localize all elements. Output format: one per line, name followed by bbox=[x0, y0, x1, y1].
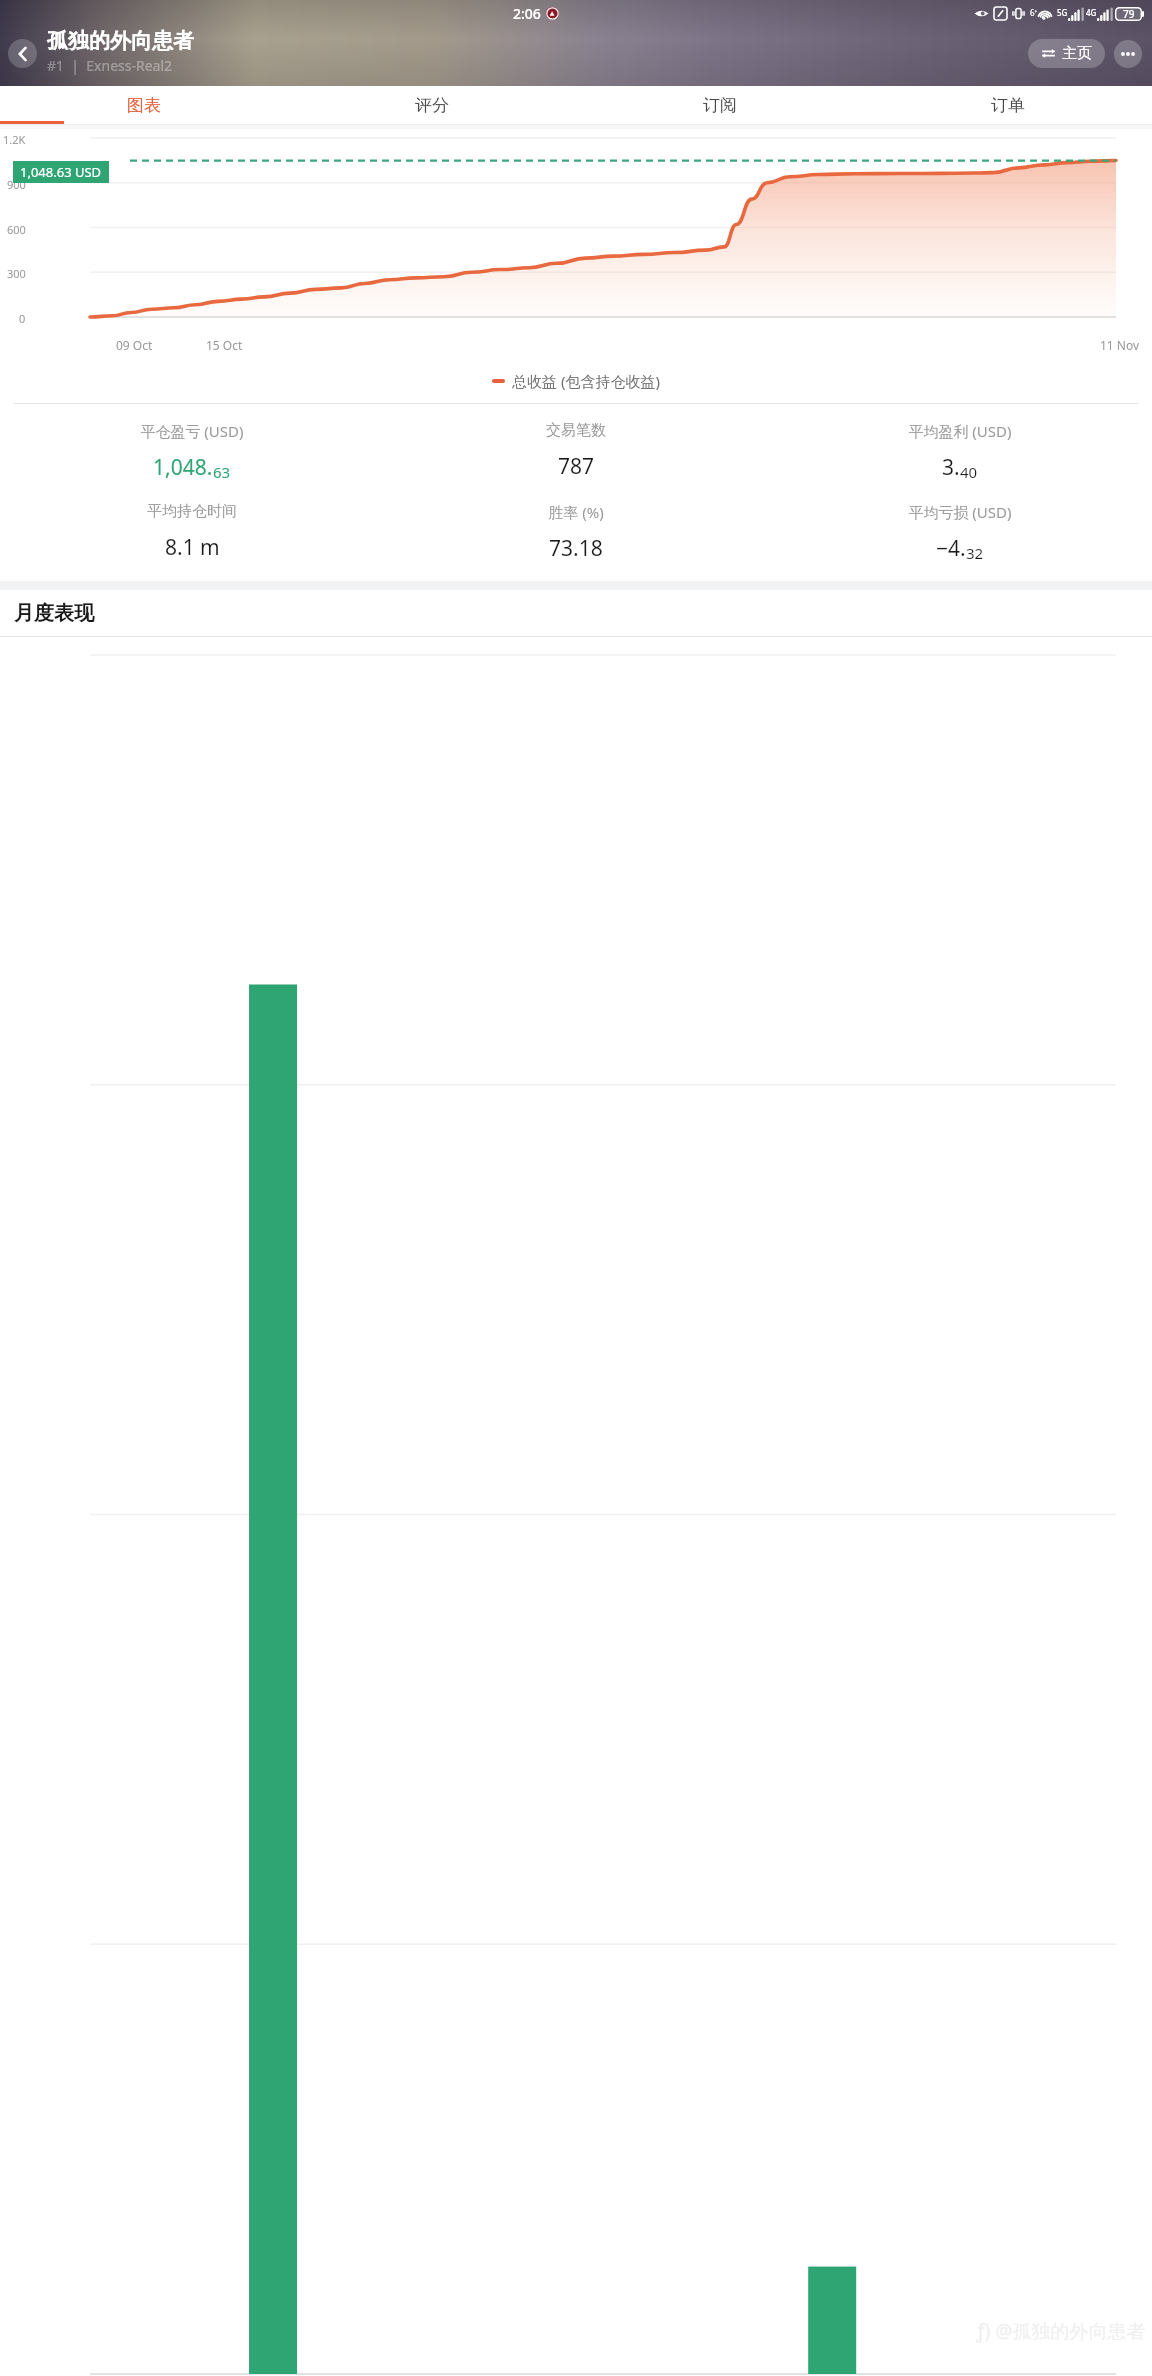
staticText: ƒ) @孤独的外向患者 bbox=[976, 2318, 1146, 2344]
staticText: 2:06 bbox=[513, 4, 541, 23]
staticText: 总收益 (包含持仓收益) bbox=[512, 371, 660, 391]
staticText: 平均盈利 (USD) bbox=[908, 421, 1012, 441]
staticText: 32 bbox=[966, 543, 984, 563]
staticText: 图表 bbox=[127, 95, 161, 116]
staticText: 平均亏损 (USD) bbox=[908, 502, 1012, 522]
staticText: 8.1 m bbox=[165, 533, 220, 562]
button[interactable]: 订阅 bbox=[576, 86, 864, 124]
staticText: 79 bbox=[1123, 7, 1135, 21]
button[interactable]: 图表 bbox=[0, 86, 288, 124]
staticText: 订阅 bbox=[703, 95, 737, 116]
staticText: 0 bbox=[19, 311, 26, 326]
staticText: 1,048.63 USD bbox=[20, 163, 102, 181]
button[interactable]: 主页 bbox=[1028, 39, 1105, 68]
staticText: 6⁺ bbox=[1030, 7, 1038, 18]
button[interactable]: More options bbox=[1114, 40, 1142, 68]
staticText: 平均持仓时间 bbox=[147, 502, 237, 521]
staticText: 主页 bbox=[1062, 44, 1092, 63]
staticText: 1,048. bbox=[153, 453, 213, 482]
staticText: 月度表现 bbox=[14, 601, 94, 626]
staticText: 300 bbox=[7, 266, 26, 281]
staticText: 40 bbox=[960, 462, 978, 482]
staticText: −4. bbox=[936, 534, 966, 563]
staticText: 订单 bbox=[991, 95, 1025, 116]
staticText: 11 Nov bbox=[1100, 337, 1140, 353]
staticText: 3. bbox=[942, 453, 960, 482]
staticText: 孤独的外向患者 bbox=[47, 28, 194, 54]
staticText: 评分 bbox=[415, 95, 449, 116]
button[interactable]: 评分 bbox=[288, 86, 576, 124]
staticText: 600 bbox=[7, 222, 26, 237]
button[interactable]: 订单 bbox=[864, 86, 1152, 124]
staticText: 09 Oct bbox=[116, 337, 153, 353]
staticText: 63 bbox=[213, 462, 231, 482]
staticText: 5G bbox=[1057, 7, 1068, 18]
staticText: #1 | Exness-Real2 bbox=[47, 56, 173, 75]
staticText: 787 bbox=[558, 452, 595, 481]
button[interactable]: Back bbox=[8, 39, 37, 68]
staticText: 1.2K bbox=[3, 132, 26, 147]
staticText: 4G bbox=[1086, 7, 1097, 18]
staticText: 交易笔数 bbox=[546, 421, 606, 440]
staticText: 15 Oct bbox=[206, 337, 243, 353]
staticText: 73.18 bbox=[549, 534, 603, 563]
staticText: 平仓盈亏 (USD) bbox=[140, 421, 244, 441]
staticText: 900 bbox=[7, 177, 26, 192]
staticText: 胜率 (%) bbox=[548, 502, 604, 522]
